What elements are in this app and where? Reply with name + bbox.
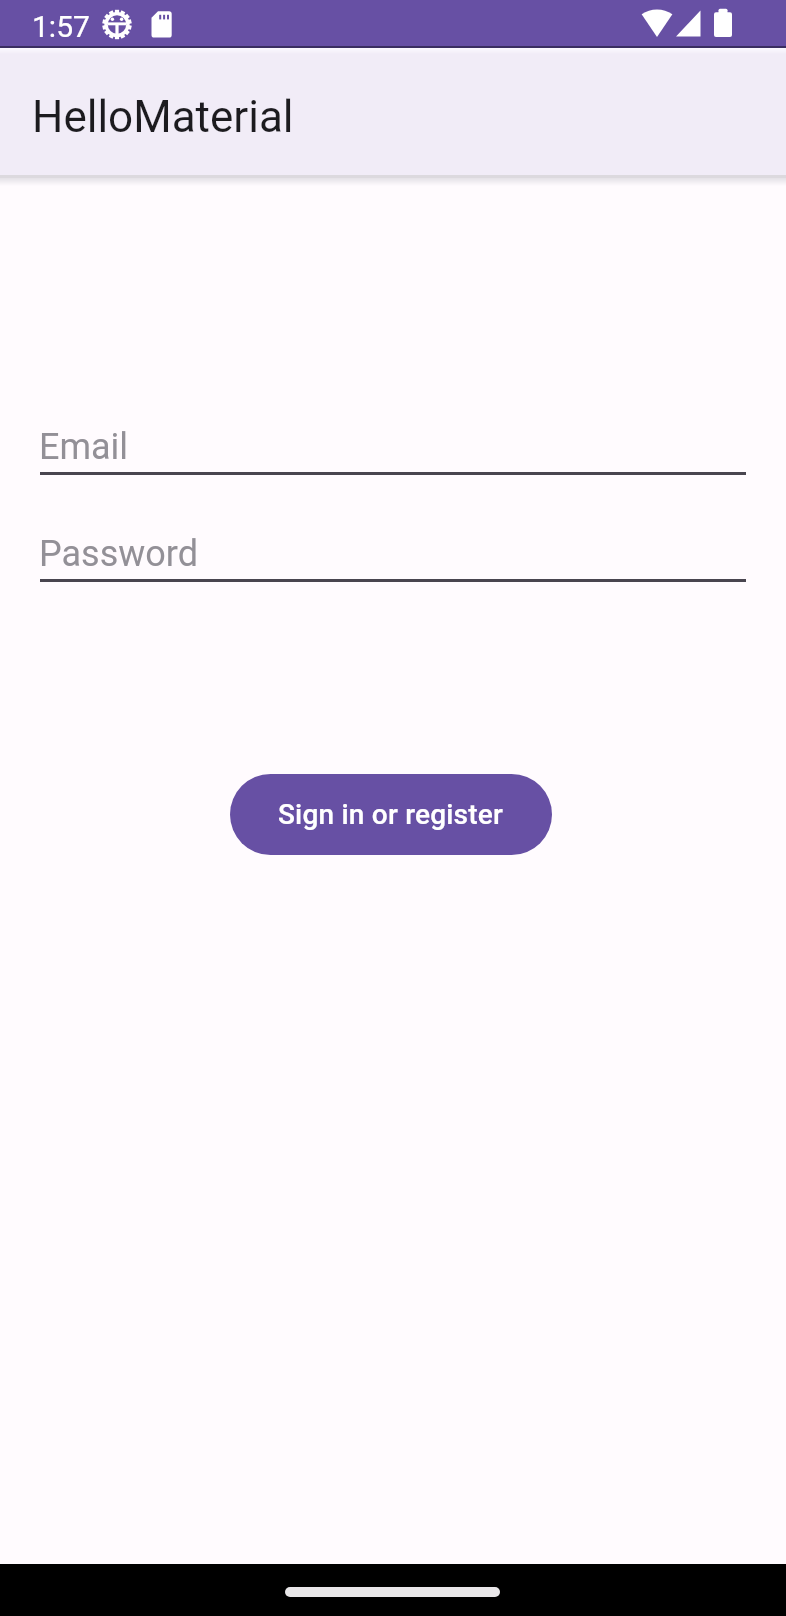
staticText: Password [39, 533, 199, 575]
button[interactable]: Password [40, 522, 746, 584]
staticText: Email [39, 426, 129, 468]
staticText: 1:57 [32, 9, 90, 44]
staticText: HelloMaterial [32, 91, 294, 143]
button[interactable]: Sign in or register [230, 774, 552, 855]
button[interactable]: Email [40, 415, 746, 477]
staticText: Sign in or register [278, 798, 504, 831]
